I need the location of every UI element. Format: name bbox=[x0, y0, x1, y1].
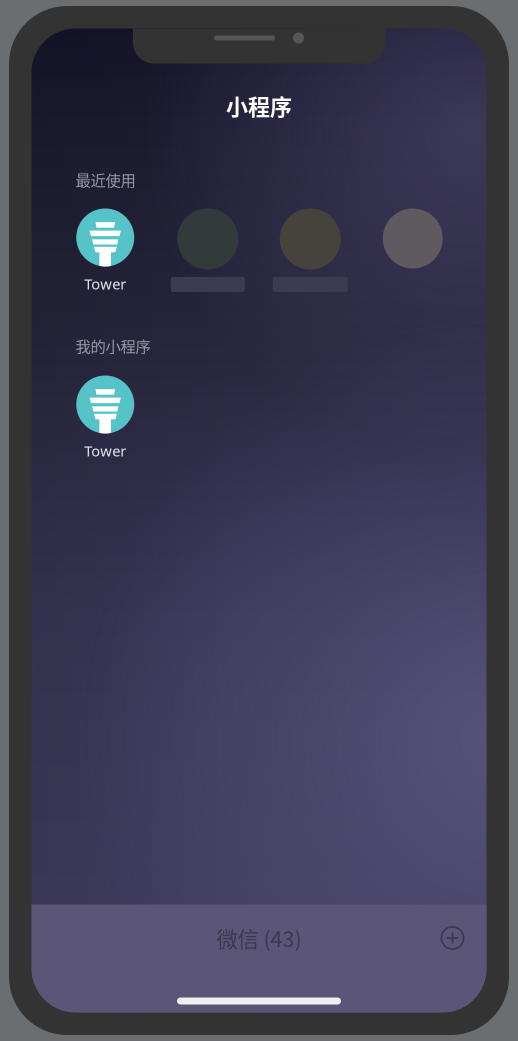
button[interactable]: Mini program bbox=[156, 208, 259, 300]
button[interactable]: Add bbox=[428, 916, 476, 960]
staticText: 我的小程序 bbox=[75, 334, 150, 357]
button[interactable]: Tower bbox=[54, 208, 156, 300]
button[interactable]: Mini program bbox=[259, 208, 361, 300]
staticText: 小程序 bbox=[226, 90, 292, 121]
staticText: Tower bbox=[84, 274, 126, 293]
button[interactable]: Mini program bbox=[361, 208, 464, 300]
button[interactable]: Tower bbox=[54, 375, 156, 467]
staticText: 微信 (43) bbox=[216, 923, 301, 953]
staticText: Tower bbox=[84, 441, 126, 460]
button[interactable]: 微信 (43) bbox=[31, 904, 486, 971]
staticText: 最近使用 bbox=[75, 168, 135, 191]
